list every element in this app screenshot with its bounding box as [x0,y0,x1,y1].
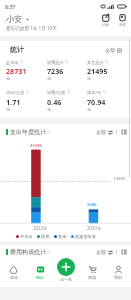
staticText: 我的 [114,275,122,280]
staticText: 3346 [87,202,97,208]
staticText: 1.71 [6,97,21,107]
staticText: 元 [87,76,92,81]
staticText: 元 [87,107,92,112]
staticText: 记账 [102,23,110,28]
staticText: 爱车已使用 1年 1月 10天 [6,25,57,31]
staticText: 2023年 [87,225,102,231]
staticText: 成本/天 [87,90,102,96]
button[interactable]: 加油 [0,258,27,287]
staticText: 25386 [30,143,42,149]
staticText: 14366 [113,176,125,182]
button[interactable]: Add record [57,258,75,276]
staticText: 高速停车等 [75,234,96,239]
staticText: 统计 [36,275,44,280]
staticText: 21495 [87,66,108,76]
button[interactable]: Record [101,13,110,28]
button[interactable]: Chart mode [121,129,127,135]
staticText: 支出年度统计 [10,128,46,136]
staticText: 元 [47,76,52,81]
button[interactable]: 全部 [96,249,113,255]
staticText: 油费总计 [47,60,64,65]
staticText: 月支出 [20,234,33,239]
button[interactable]: 商城 [79,258,105,287]
staticText: 记一笔 [60,277,72,282]
staticText: 70.94 [87,97,106,107]
staticText: 元 [6,107,11,112]
staticText: 2022年 [33,225,48,231]
button[interactable]: 全部 [96,129,113,135]
staticText: 油费/公里 [47,90,66,96]
staticText: 0.46 [47,97,62,107]
button[interactable]: Maintenance [118,13,127,28]
staticText: 8:37 [5,3,16,10]
staticText: 支出/公里 [6,90,25,96]
staticText: 全部 [96,129,106,135]
staticText: 总支出 [6,60,19,65]
staticText: 小安 [6,14,23,24]
staticText: 其他 [58,234,67,239]
staticText: 全部 [96,249,106,255]
staticText: 统计 [10,45,24,54]
button[interactable]: 全部 [105,47,122,53]
staticText: 28731 [6,66,27,76]
staticText: 其它总计 [87,60,104,65]
staticText: 元 [6,76,11,81]
staticText: 保养 [41,234,50,239]
staticText: 加油 [10,275,18,280]
staticText: 全部 [105,47,115,53]
button[interactable]: 我的 [105,258,131,287]
button[interactable]: 统计 [27,258,53,287]
staticText: 保养 [119,23,127,28]
button[interactable]: 小安 [6,14,29,24]
staticText: 商城 [88,275,96,280]
staticText: 元 [47,107,52,112]
button[interactable]: Chart mode [121,249,127,255]
staticText: 7236 [47,66,64,76]
staticText: 费用构成统计 [10,248,46,256]
